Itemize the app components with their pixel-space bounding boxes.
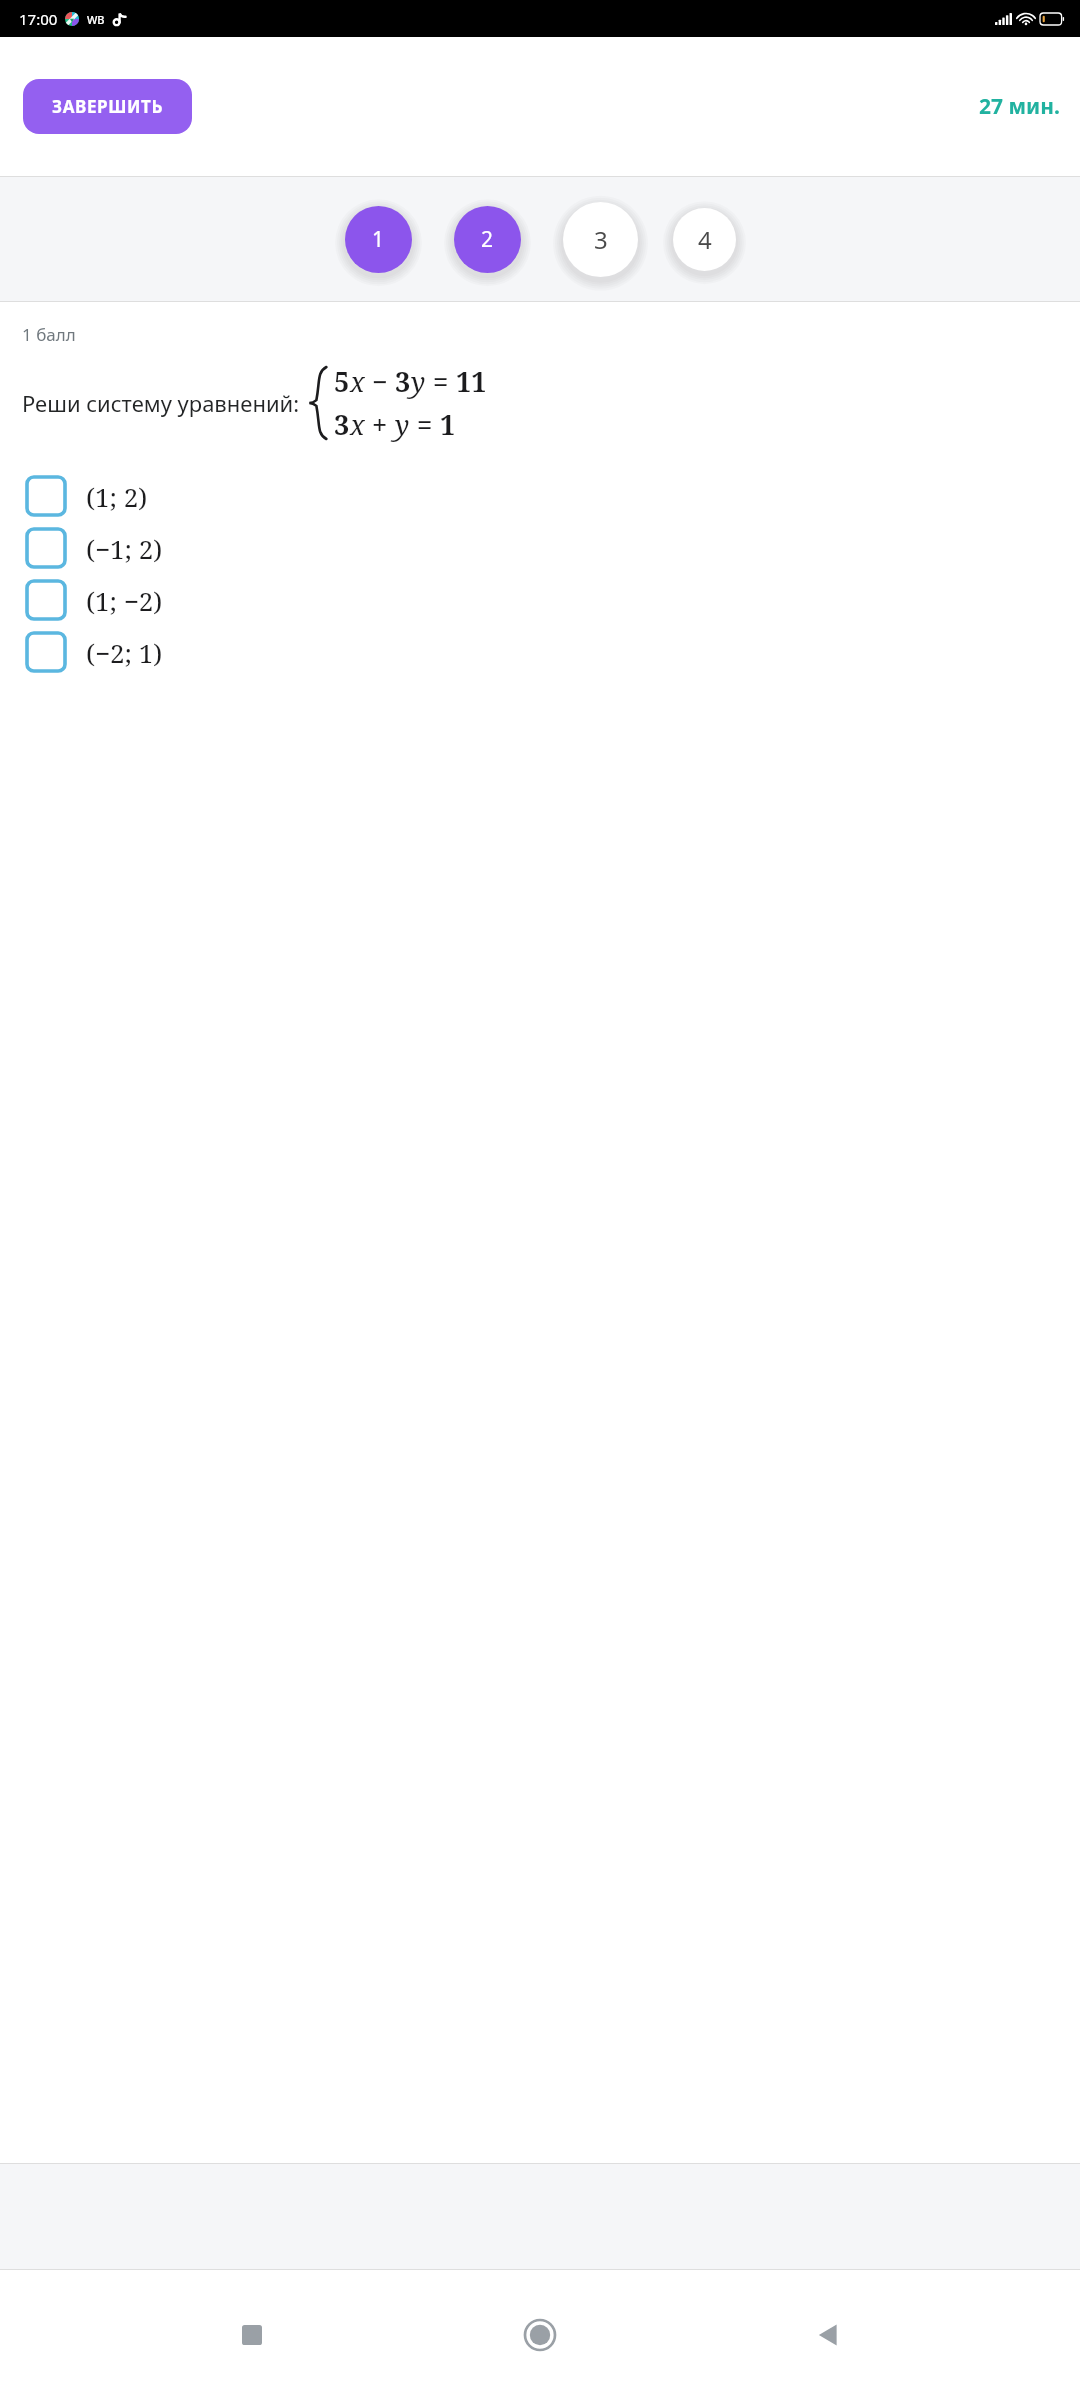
staticText: 2 [481, 225, 494, 254]
staticText: x [350, 406, 365, 443]
staticText: 4 [698, 223, 712, 256]
button[interactable]: 2 [454, 206, 521, 273]
button[interactable]: 1 [345, 206, 412, 273]
button[interactable]: 3 [563, 202, 638, 277]
button[interactable]: (1; 2) [0, 470, 1080, 522]
staticText: 1 [440, 406, 456, 443]
button[interactable]: (1; −2) [0, 574, 1080, 626]
button[interactable]: (−2; 1) [0, 626, 1080, 678]
staticText: (−1; 2) [86, 531, 163, 566]
button[interactable]: 4 [673, 208, 736, 271]
staticText: (1; −2) [86, 583, 163, 618]
staticText: 3 [334, 406, 350, 443]
staticText: 1 балл [22, 323, 76, 346]
staticText: 3 [594, 223, 608, 256]
button[interactable]: Back [792, 2299, 864, 2371]
staticText: ЗАВЕРШИТЬ [52, 95, 163, 118]
staticText: WB [87, 12, 105, 27]
staticText: 5 [334, 363, 350, 400]
staticText: Реши систему уравнений: [22, 388, 300, 418]
button[interactable]: ЗАВЕРШИТЬ [23, 79, 192, 134]
staticText: 27 мин. [979, 92, 1060, 121]
staticText: x [350, 363, 365, 400]
staticText: 3 [395, 363, 411, 400]
staticText: y [411, 363, 426, 400]
button[interactable]: Home [504, 2299, 576, 2371]
staticText: 11 [456, 363, 487, 400]
staticText: − [365, 363, 395, 400]
staticText: y [395, 406, 410, 443]
staticText: (−2; 1) [86, 635, 163, 670]
button[interactable]: (−1; 2) [0, 522, 1080, 574]
staticText: = [410, 406, 440, 443]
staticText: 1 [372, 225, 385, 254]
staticText: (1; 2) [86, 479, 148, 514]
staticText: = [426, 363, 456, 400]
button[interactable]: Recents [216, 2299, 288, 2371]
staticText: 17:00 [19, 9, 58, 29]
staticText: + [365, 406, 395, 443]
